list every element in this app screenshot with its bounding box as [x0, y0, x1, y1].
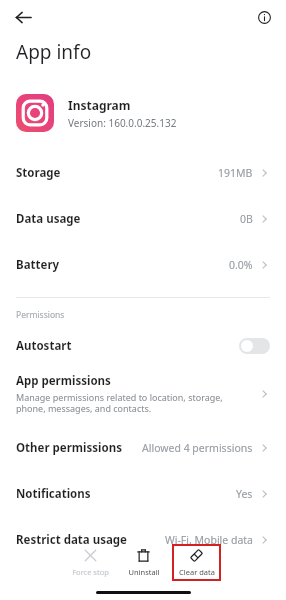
staticText: Version: 160.0.0.25.132 [68, 116, 177, 130]
staticText: Clear data [179, 567, 215, 577]
button[interactable]: Force stop [66, 544, 115, 581]
staticText: 0B [240, 212, 253, 226]
button[interactable]: Clear data [172, 544, 221, 581]
staticText: Other permissions [16, 440, 122, 456]
button[interactable]: Autostart [0, 331, 286, 361]
staticText: Autostart [16, 338, 72, 354]
button[interactable]: Restrict data usage [0, 521, 286, 559]
staticText: Permissions [16, 309, 65, 321]
staticText: Allowed 4 permissions [142, 441, 253, 455]
staticText: Force stop [72, 567, 109, 577]
button[interactable]: Autostart toggle, off [239, 338, 270, 354]
staticText: Wi-Fi, Mobile data [165, 533, 253, 547]
button[interactable]: Notifications [0, 475, 286, 513]
staticText: Uninstall [128, 567, 160, 577]
button[interactable]: Back [8, 2, 38, 32]
staticText: App permissions [16, 373, 111, 389]
button[interactable]: App permissions [0, 373, 286, 415]
staticText: Notifications [16, 486, 91, 502]
button[interactable]: Battery [0, 246, 286, 284]
button[interactable]: App details info [251, 4, 277, 30]
button[interactable]: Storage [0, 154, 286, 192]
button[interactable]: Instagram [0, 94, 286, 132]
staticText: Yes [236, 487, 253, 501]
staticText: Instagram [68, 97, 131, 113]
button[interactable]: Data usage [0, 200, 286, 238]
staticText: Data usage [16, 211, 81, 227]
staticText: 191MB [218, 166, 253, 180]
button[interactable]: Uninstall [119, 544, 168, 581]
staticText: App info [16, 39, 92, 65]
staticText: Storage [16, 165, 61, 181]
staticText: Manage permissions related to location, … [16, 391, 252, 415]
button[interactable]: Other permissions [0, 429, 286, 467]
staticText: Restrict data usage [16, 532, 127, 548]
staticText: 0.0% [229, 258, 253, 272]
staticText: Battery [16, 257, 60, 273]
